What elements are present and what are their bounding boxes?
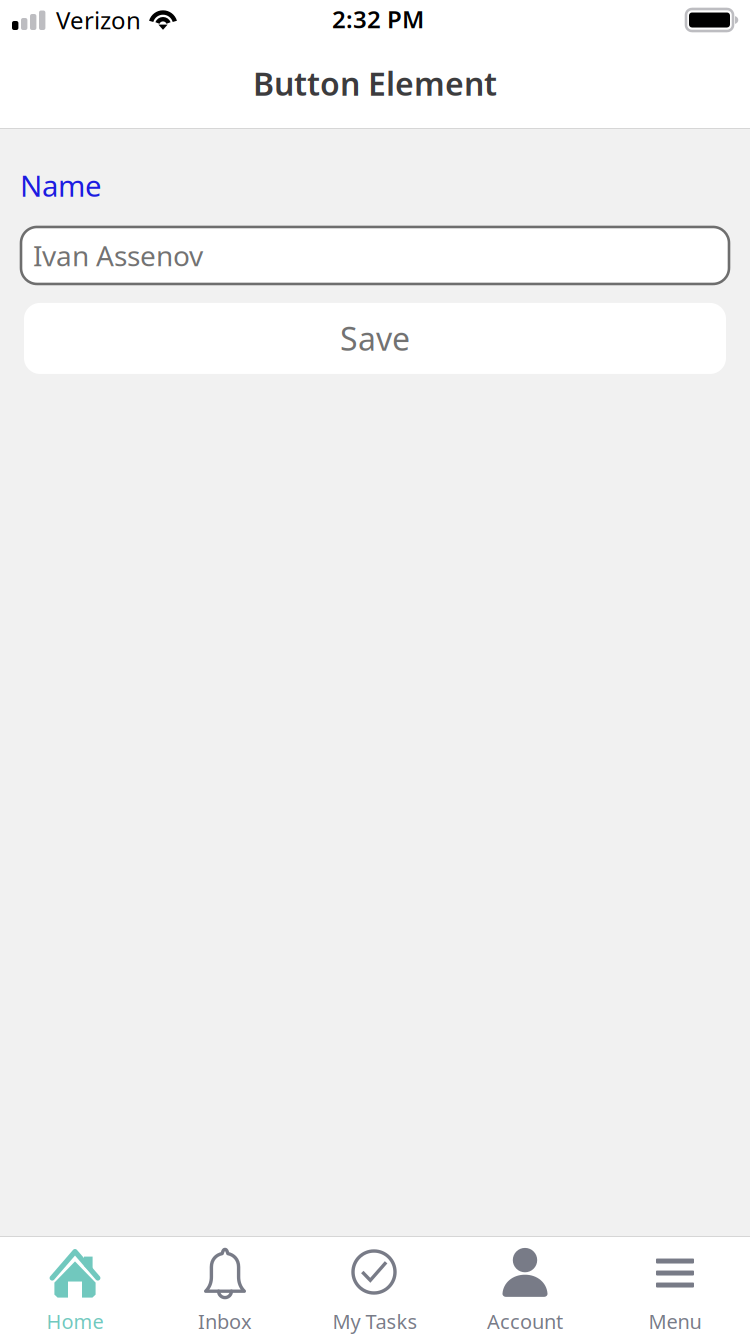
staticText: Account (487, 1308, 563, 1334)
button[interactable]: Inbox (150, 1236, 300, 1334)
staticText: Button Element (253, 62, 497, 104)
button[interactable]: Menu (600, 1236, 750, 1334)
button[interactable]: My Tasks (300, 1236, 450, 1334)
staticText: Menu (648, 1308, 701, 1334)
staticText: Home (46, 1308, 103, 1334)
staticText: Name (20, 166, 102, 205)
staticText: Save (340, 317, 410, 360)
staticText: Verizon (56, 4, 141, 36)
staticText: 2:32 PM (332, 3, 424, 35)
staticText: Ivan Assenov (33, 237, 203, 274)
button[interactable]: Save (24, 303, 726, 374)
staticText: My Tasks (332, 1308, 417, 1334)
staticText: Inbox (198, 1308, 252, 1334)
button[interactable]: Home (0, 1236, 150, 1334)
button[interactable]: Ivan Assenov (21, 227, 729, 284)
button[interactable]: Account (450, 1236, 600, 1334)
